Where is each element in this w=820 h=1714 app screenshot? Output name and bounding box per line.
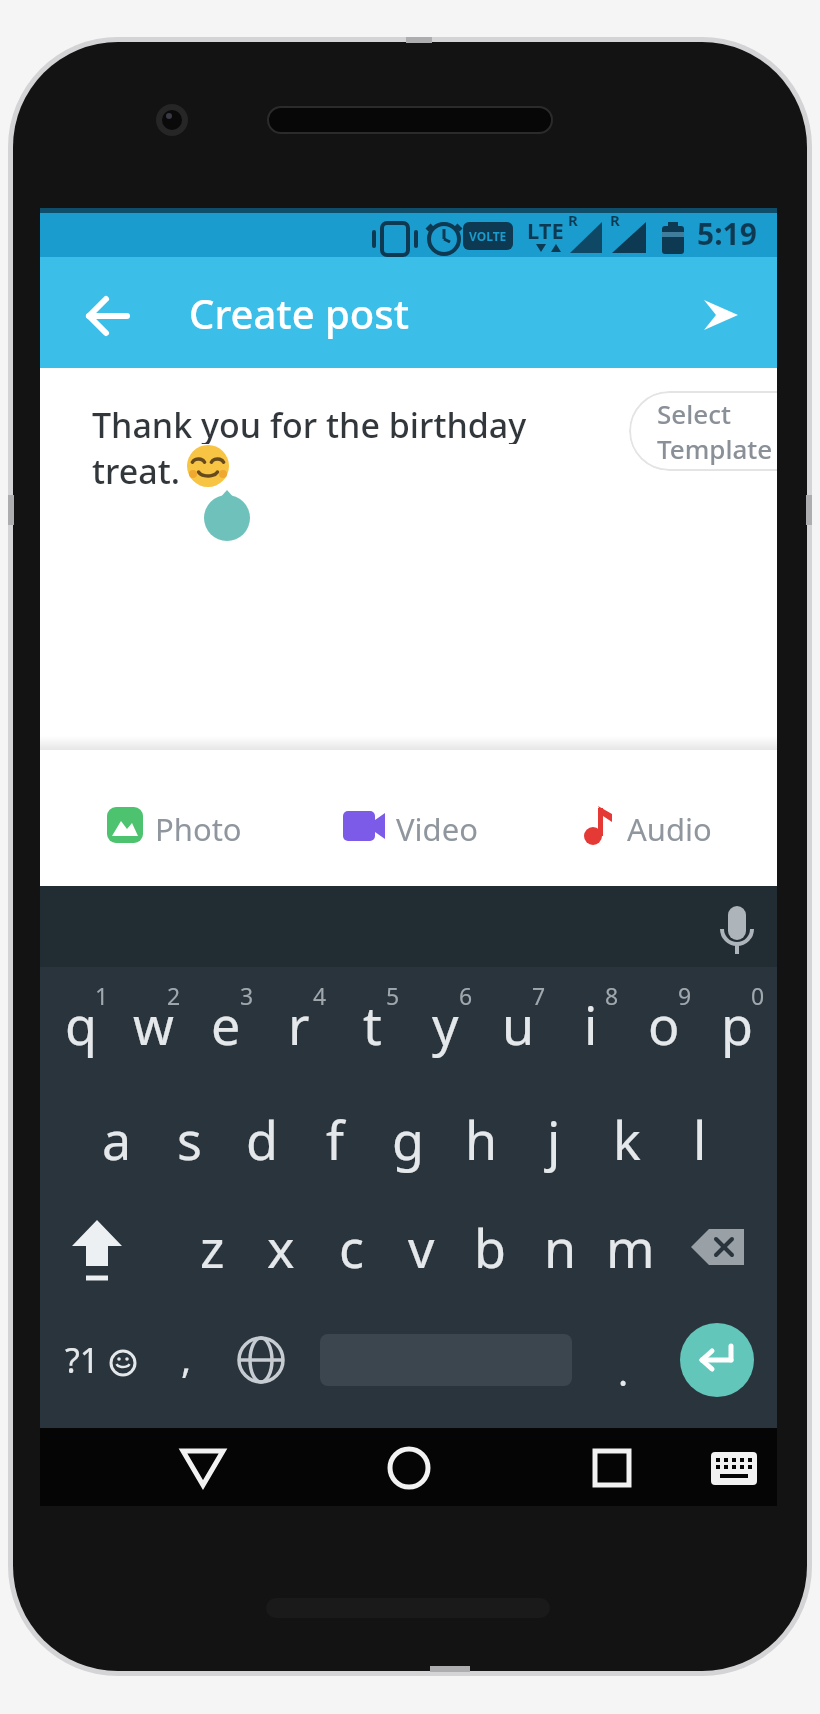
button[interactable] <box>572 1431 652 1503</box>
staticText: 5 <box>386 980 400 1010</box>
button[interactable] <box>336 798 526 854</box>
button[interactable]: j <box>518 1089 590 1189</box>
staticText: t <box>363 989 382 1060</box>
button[interactable]: x <box>247 1197 315 1297</box>
button[interactable] <box>236 1326 288 1394</box>
button[interactable]: o <box>628 974 700 1074</box>
button[interactable]: d <box>226 1089 298 1189</box>
staticText: m <box>606 1212 655 1283</box>
staticText: l <box>693 1104 707 1175</box>
button[interactable]: p <box>701 974 773 1074</box>
button[interactable] <box>100 798 290 854</box>
staticText: LTE <box>527 215 564 245</box>
staticText: Audio <box>627 808 712 844</box>
staticText: VOLTE <box>469 228 507 244</box>
staticText: n <box>544 1212 577 1283</box>
staticText: 2 <box>167 980 181 1010</box>
button[interactable]: l <box>664 1089 736 1189</box>
staticText: p <box>721 989 753 1060</box>
button[interactable] <box>60 1308 164 1412</box>
staticText: b <box>474 1212 506 1283</box>
staticText: Photo <box>155 808 242 844</box>
staticText: treat. <box>92 448 180 490</box>
staticText: 5:19 <box>697 213 757 254</box>
staticText: c <box>339 1212 364 1283</box>
button[interactable] <box>670 1197 770 1297</box>
staticText: j <box>547 1104 561 1175</box>
staticText: v <box>408 1212 435 1283</box>
button[interactable] <box>690 288 750 344</box>
staticText: k <box>613 1104 641 1175</box>
button[interactable]: t <box>336 974 408 1074</box>
staticText: Video <box>396 808 478 844</box>
staticText: . <box>618 1345 629 1397</box>
staticText: 0 <box>751 980 765 1010</box>
staticText: 8 <box>605 980 619 1010</box>
button[interactable]: v <box>387 1197 455 1297</box>
staticText: 3 <box>240 980 254 1010</box>
staticText: R <box>568 210 578 230</box>
button[interactable]: w <box>117 974 189 1074</box>
staticText: 1 <box>95 980 109 1010</box>
staticText: i <box>584 989 598 1060</box>
button[interactable] <box>68 288 124 344</box>
button[interactable]: e <box>190 974 262 1074</box>
button[interactable]: . <box>598 1329 648 1413</box>
staticText: r <box>288 989 310 1060</box>
button[interactable] <box>369 1431 449 1503</box>
staticText: e <box>211 989 241 1060</box>
staticText: Thank you for the birthday <box>92 402 527 444</box>
button[interactable] <box>580 798 760 854</box>
button[interactable]: Select <box>629 391 777 471</box>
staticText: d <box>246 1104 278 1175</box>
button[interactable]: q <box>45 974 117 1074</box>
staticText: ?1 <box>65 1337 100 1383</box>
button[interactable]: r <box>263 974 335 1074</box>
button[interactable]: n <box>526 1197 594 1297</box>
staticText: 7 <box>532 980 546 1010</box>
button[interactable]: f <box>299 1089 371 1189</box>
staticText: s <box>177 1104 202 1175</box>
staticText: w <box>133 989 174 1060</box>
button[interactable] <box>710 898 766 958</box>
button[interactable] <box>680 1323 754 1397</box>
staticText: 9 <box>678 980 692 1010</box>
staticText: g <box>392 1104 424 1175</box>
button[interactable] <box>711 1448 761 1488</box>
staticText: R <box>610 210 620 230</box>
staticText: 6 <box>459 980 473 1010</box>
staticText: , <box>181 1332 192 1384</box>
staticText: Select <box>657 396 731 431</box>
staticText: q <box>65 989 97 1060</box>
staticText: o <box>648 989 680 1060</box>
staticText: y <box>432 989 459 1060</box>
staticText: a <box>102 1104 132 1175</box>
staticText: f <box>326 1104 344 1175</box>
button[interactable]: h <box>445 1089 517 1189</box>
button[interactable]: , <box>161 1316 211 1400</box>
button[interactable]: z <box>178 1197 246 1297</box>
button[interactable]: y <box>409 974 481 1074</box>
staticText: h <box>465 1104 498 1175</box>
button[interactable]: i <box>555 974 627 1074</box>
button[interactable]: u <box>482 974 554 1074</box>
staticText: Template <box>657 431 773 466</box>
button[interactable]: m <box>596 1197 664 1297</box>
staticText: Create post <box>189 286 410 340</box>
staticText: z <box>200 1212 225 1283</box>
staticText: u <box>502 989 535 1060</box>
button[interactable] <box>163 1431 243 1503</box>
button[interactable]: g <box>372 1089 444 1189</box>
staticText: x <box>267 1212 295 1283</box>
button[interactable]: c <box>317 1197 385 1297</box>
button[interactable]: ?1 <box>56 1318 108 1402</box>
staticText: 4 <box>313 980 327 1010</box>
button[interactable]: s <box>153 1089 225 1189</box>
button[interactable]: b <box>456 1197 524 1297</box>
button[interactable]: k <box>591 1089 663 1189</box>
button[interactable]: a <box>81 1089 153 1189</box>
